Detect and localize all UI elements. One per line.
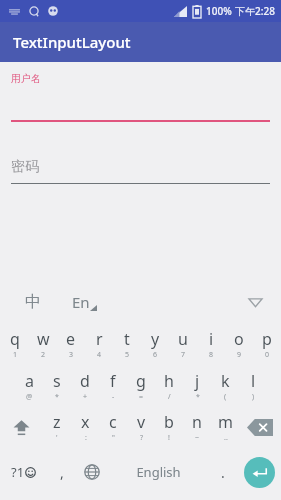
button[interactable]: b — [155, 406, 183, 448]
button[interactable]: u — [169, 322, 197, 365]
staticText: . — [221, 463, 225, 482]
staticText: 6 — [153, 350, 158, 360]
staticText: 9 — [237, 350, 242, 360]
button[interactable]: , — [47, 448, 76, 496]
staticText: w — [37, 328, 50, 350]
staticText: 下午2:28 — [235, 4, 275, 18]
button[interactable]: Backspace — [239, 406, 281, 448]
button[interactable]: y — [141, 322, 169, 365]
staticText: 1 — [13, 350, 18, 360]
staticText: / — [168, 392, 171, 402]
staticText: 3 — [69, 350, 74, 360]
staticText: m — [218, 411, 233, 433]
staticText: f — [110, 370, 116, 392]
staticText: t — [124, 328, 130, 350]
staticText: 4 — [97, 350, 102, 360]
button[interactable]: z — [43, 406, 71, 448]
staticText: r — [96, 328, 103, 350]
button[interactable]: TextInputLayout — [0, 22, 281, 62]
staticText: ?1 — [11, 463, 25, 481]
button[interactable]: a — [15, 365, 43, 406]
button[interactable]: h — [155, 365, 183, 406]
staticText: a — [25, 370, 34, 392]
button[interactable]: s — [43, 365, 71, 406]
staticText: : — [85, 433, 87, 443]
staticText: h — [164, 370, 174, 392]
button[interactable]: Hide keyboard — [243, 290, 267, 314]
staticText: 0 — [265, 350, 270, 360]
staticText: y — [151, 328, 160, 350]
staticText: TextInputLayout — [13, 32, 131, 52]
button[interactable]: i — [197, 322, 225, 365]
staticText: 用户名 — [11, 72, 41, 85]
staticText: = — [139, 392, 144, 402]
button[interactable]: v — [127, 406, 155, 448]
staticText: 100% — [206, 4, 232, 18]
staticText: " — [112, 433, 115, 443]
staticText: l — [251, 370, 256, 392]
staticText: u — [178, 328, 188, 350]
button[interactable]: r — [85, 322, 113, 365]
button[interactable]: j — [183, 365, 211, 406]
staticText: ) — [252, 392, 255, 402]
button[interactable]: f — [99, 365, 127, 406]
button[interactable]: English — [108, 448, 208, 496]
staticText: ~ — [195, 433, 200, 443]
staticText: English — [136, 463, 181, 481]
button[interactable]: p — [253, 322, 281, 365]
staticText: 2 — [41, 350, 46, 360]
staticText: k — [221, 370, 230, 392]
staticText: .. — [224, 433, 228, 443]
button[interactable]: d — [71, 365, 99, 406]
staticText: q — [10, 328, 20, 350]
button[interactable]: En — [72, 292, 97, 312]
button[interactable]: Shift — [0, 406, 43, 448]
button[interactable]: Chinese input — [20, 289, 46, 315]
staticText: d — [80, 370, 90, 392]
button[interactable]: n — [183, 406, 211, 448]
staticText: x — [81, 411, 90, 433]
button[interactable]: k — [211, 365, 239, 406]
button[interactable]: ?1 — [0, 448, 47, 496]
staticText: z — [53, 411, 61, 433]
button[interactable]: t — [113, 322, 141, 365]
button[interactable]: c — [99, 406, 127, 448]
button[interactable]: o — [225, 322, 253, 365]
button[interactable]: Switch language — [76, 448, 108, 496]
staticText: b — [164, 411, 174, 433]
staticText: 5 — [125, 350, 130, 360]
staticText: ? — [140, 433, 144, 443]
staticText: * — [55, 392, 59, 402]
staticText: @ — [26, 392, 33, 402]
staticText: j — [195, 370, 200, 392]
button[interactable]: . — [208, 448, 237, 496]
staticText: e — [66, 328, 76, 350]
button[interactable]: 用户名 — [11, 72, 270, 120]
staticText: ( — [224, 392, 227, 402]
staticText: v — [137, 411, 146, 433]
staticText: 密码 — [11, 158, 39, 176]
staticText: ' — [56, 433, 58, 443]
staticText: g — [136, 370, 146, 392]
staticText: 8 — [209, 350, 214, 360]
button[interactable]: m — [211, 406, 239, 448]
staticText: , — [60, 463, 64, 482]
staticText: - — [112, 392, 115, 402]
staticText: p — [262, 328, 272, 350]
button[interactable]: x — [71, 406, 99, 448]
button[interactable]: e — [57, 322, 85, 365]
staticText: o — [234, 328, 244, 350]
staticText: ! — [168, 433, 170, 443]
staticText: * — [196, 392, 200, 402]
staticText: 中 — [25, 292, 41, 312]
staticText: i — [209, 328, 214, 350]
button[interactable]: l — [239, 365, 267, 406]
staticText: c — [109, 411, 117, 433]
button[interactable]: w — [29, 322, 57, 365]
staticText: 7 — [181, 350, 186, 360]
button[interactable]: Enter — [244, 457, 275, 488]
button[interactable]: q — [0, 322, 29, 365]
button[interactable]: g — [127, 365, 155, 406]
staticText: En — [72, 292, 90, 312]
button[interactable]: 密码 — [11, 155, 270, 179]
